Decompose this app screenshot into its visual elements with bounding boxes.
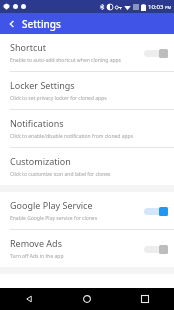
button[interactable]: Customization (0, 148, 174, 185)
staticText: Remove Ads (10, 237, 62, 249)
staticText: Settings (22, 17, 61, 31)
button[interactable]: Toggle off (144, 243, 168, 255)
button[interactable]: Home (58, 288, 116, 310)
staticText: Customization (10, 155, 71, 167)
staticText: Enable Google Play service for clones (10, 215, 98, 222)
staticText: Enable to auto-add shortcut when cloning… (10, 57, 121, 64)
button[interactable]: Back (4, 16, 20, 32)
staticText: Click to enable/disable notification fro… (10, 133, 134, 140)
staticText: 10:03 (148, 3, 164, 11)
staticText: Google Play Service (10, 199, 93, 211)
button[interactable]: Toggle on (144, 205, 168, 217)
staticText: Shortcut (10, 41, 47, 53)
button[interactable]: Notifications (0, 110, 174, 147)
button[interactable]: Locker Settings (0, 72, 174, 109)
staticText: Click to set privacy locker for cloned a… (10, 95, 107, 102)
button[interactable]: Toggle off (144, 47, 168, 59)
staticText: Locker Settings (10, 79, 75, 91)
button[interactable]: Recents (116, 288, 174, 310)
staticText: Notifications (10, 117, 64, 129)
staticText: Click to customize icon and label for cl… (10, 171, 111, 178)
button[interactable]: Remove Ads (0, 230, 174, 267)
button[interactable]: Shortcut (0, 34, 174, 71)
staticText: Turn off Ads in the app (10, 253, 64, 260)
staticText: PM (165, 5, 172, 10)
button[interactable]: Back (0, 288, 58, 310)
button[interactable]: Google Play Service (0, 192, 174, 229)
